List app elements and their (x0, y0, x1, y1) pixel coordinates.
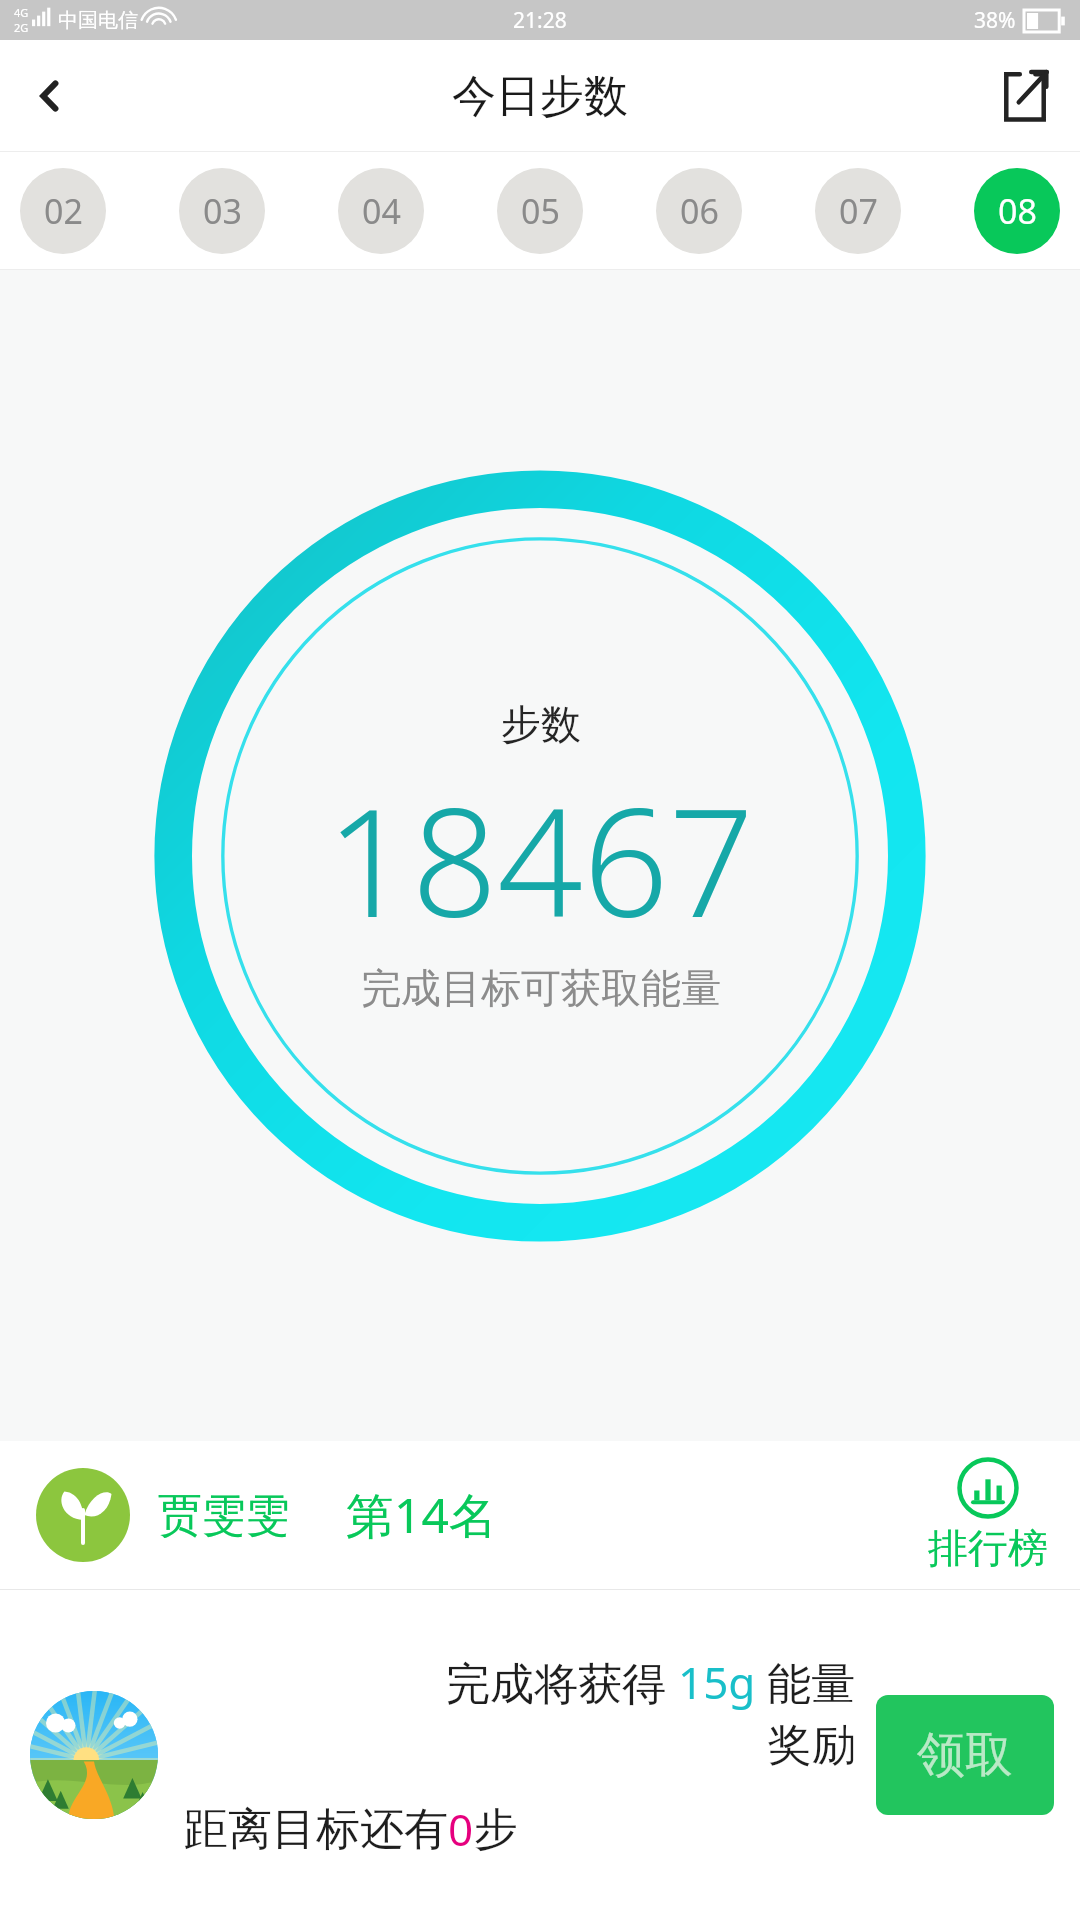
staticText: 21:28 (513, 6, 567, 35)
button[interactable]: 排行榜 (920, 1457, 1056, 1573)
button[interactable]: 08 (974, 168, 1060, 254)
staticText: 步数 (501, 699, 581, 749)
staticText: 中国电信 (58, 8, 138, 33)
staticText: 完成将获得 (446, 1652, 678, 1712)
button[interactable]: 04 (338, 168, 424, 254)
staticText: 今日步数 (452, 69, 628, 124)
staticText: 完成目标可获取能量 (361, 963, 721, 1013)
staticText: 03 (203, 188, 242, 234)
staticText: 4G (14, 5, 29, 20)
staticText: 贾雯雯 (158, 1488, 290, 1543)
button[interactable]: Share (970, 46, 1080, 146)
staticText: 步 (474, 1802, 518, 1857)
button[interactable]: 02 (20, 168, 106, 254)
staticText: 07 (839, 188, 878, 234)
button[interactable]: Back (0, 46, 100, 146)
staticText: 38% (974, 6, 1016, 35)
staticText: 02 (44, 188, 83, 234)
staticText: 奖励 (768, 1718, 856, 1773)
button[interactable]: 05 (497, 168, 583, 254)
button[interactable]: Avatar (36, 1468, 130, 1562)
button[interactable]: 领取 (876, 1695, 1054, 1815)
button[interactable]: 07 (815, 168, 901, 254)
staticText: 04 (362, 188, 401, 234)
button[interactable]: Reward (30, 1691, 158, 1819)
staticText: 06 (680, 188, 719, 234)
staticText: 2G (14, 20, 29, 35)
staticText: 第14名 (346, 1482, 497, 1548)
staticText: 15g (678, 1652, 756, 1712)
staticText: 08 (998, 188, 1037, 234)
staticText: 领取 (917, 1725, 1013, 1785)
staticText: 能量 (756, 1652, 856, 1712)
staticText: 05 (521, 188, 560, 234)
button[interactable]: 06 (656, 168, 742, 254)
button[interactable]: 03 (179, 168, 265, 254)
staticText: 距离目标还有 (184, 1802, 448, 1857)
staticText: 排行榜 (928, 1523, 1048, 1573)
staticText: 0 (448, 1799, 474, 1859)
staticText: 18467 (326, 757, 755, 961)
